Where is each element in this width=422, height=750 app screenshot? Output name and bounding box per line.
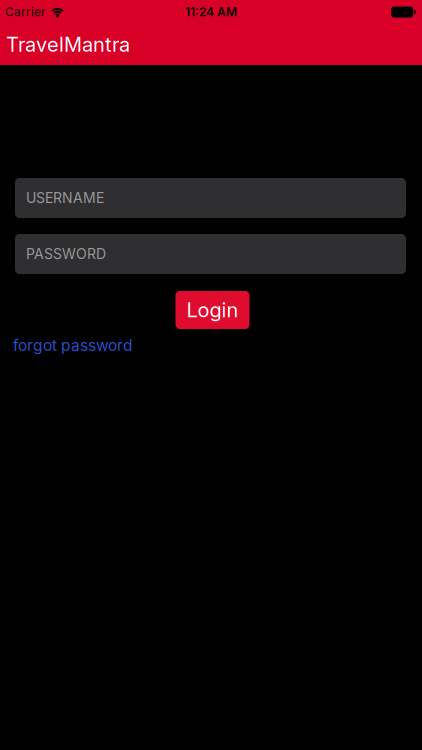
staticText: PASSWORD (26, 245, 106, 262)
staticText: Carrier (5, 5, 46, 19)
staticText: USERNAME (26, 189, 104, 206)
button[interactable]: PASSWORD (15, 234, 406, 274)
button[interactable]: USERNAME (15, 178, 406, 218)
button[interactable]: Login (175, 291, 249, 329)
staticText: Login (186, 298, 238, 322)
staticText: 11:24 AM (185, 5, 237, 19)
button[interactable]: forgot password (13, 336, 132, 355)
staticText: TravelMantra (6, 32, 130, 57)
staticText: forgot password (13, 336, 132, 355)
